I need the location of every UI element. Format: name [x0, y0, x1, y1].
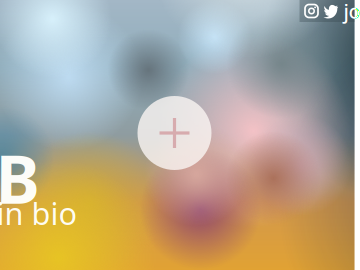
- button[interactable]: Instagram: [304, 4, 318, 18]
- button[interactable]: Add: [137, 96, 211, 170]
- staticText: B: [0, 134, 39, 222]
- button[interactable]: jo: [343, 0, 360, 24]
- staticText: jo: [343, 0, 360, 24]
- staticText: in bio: [0, 193, 77, 233]
- button[interactable]: Twitter: [323, 3, 338, 18]
